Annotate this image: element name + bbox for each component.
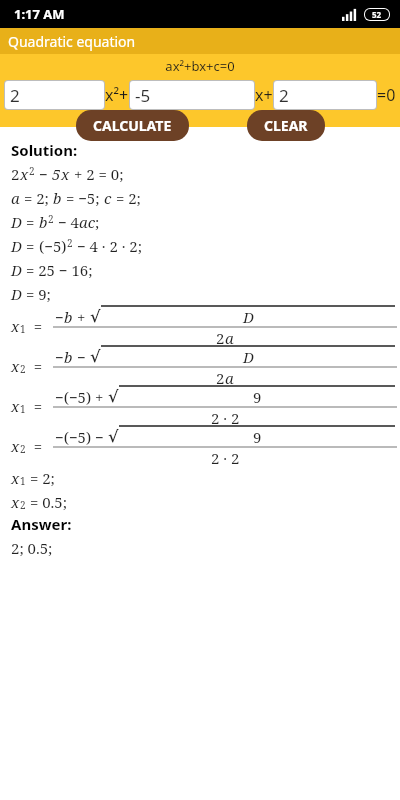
button[interactable]: 2 (5, 81, 104, 109)
staticText: 2 (29, 164, 35, 178)
staticText: Quadratic equation (8, 32, 136, 51)
staticText: x (11, 436, 20, 456)
staticText: − (55, 347, 64, 367)
staticText: x (11, 316, 20, 336)
staticText: 2 (279, 84, 289, 107)
staticText: = 2; (112, 188, 141, 208)
staticText: −(−5) + (55, 387, 108, 407)
staticText: √ (108, 387, 119, 406)
staticText: − 4 (54, 212, 79, 232)
staticText: = 2; (26, 468, 55, 488)
staticText: ax²+bx+c=0 (0, 57, 400, 75)
staticText: x+ (255, 84, 273, 106)
staticText: D (11, 212, 22, 232)
staticText: x (11, 356, 20, 376)
staticText: D (11, 284, 22, 304)
staticText: 2 (216, 368, 225, 386)
staticText: √ (90, 347, 101, 366)
staticText: x (11, 492, 20, 512)
button[interactable]: -5 (130, 81, 254, 109)
staticText: D (243, 307, 254, 327)
staticText: − (35, 164, 52, 184)
staticText: x (61, 164, 70, 184)
button[interactable]: CLEAR (247, 110, 325, 141)
staticText: b (64, 307, 73, 327)
staticText: x (20, 164, 29, 184)
staticText: 5 (52, 164, 61, 184)
staticText: a (11, 188, 20, 208)
button[interactable]: 2 (274, 81, 376, 109)
staticText: Solution: (11, 140, 78, 160)
staticText: x²+ (105, 84, 129, 106)
staticText: (−5) (39, 236, 67, 256)
staticText: CLEAR (264, 116, 308, 135)
button[interactable]: CALCULATE (76, 110, 189, 141)
staticText: a (225, 368, 234, 386)
staticText: Answer: (11, 514, 72, 534)
staticText: − (55, 307, 64, 327)
staticText: −(−5) − (55, 427, 108, 447)
staticText: b (53, 188, 62, 208)
staticText: 2 · 2 (211, 408, 240, 426)
staticText: 1 (20, 474, 26, 488)
staticText: ; (95, 212, 100, 232)
staticText: 2 · 2 (211, 448, 240, 466)
staticText: = (22, 212, 39, 232)
staticText: 2 (10, 84, 20, 107)
staticText: 9 (253, 427, 262, 447)
staticText: -5 (135, 84, 151, 107)
staticText: √ (108, 427, 119, 446)
staticText: 2 (20, 442, 26, 456)
staticText: 2 (48, 212, 54, 226)
staticText: 2; 0.5; (11, 538, 53, 558)
staticText: D (243, 347, 254, 367)
staticText: = 9; (22, 284, 51, 304)
staticText: = (26, 396, 50, 416)
staticText: 2 (20, 362, 26, 376)
staticText: = 2; (20, 188, 53, 208)
staticText: = −5; (62, 188, 104, 208)
staticText: b (39, 212, 48, 232)
staticText: 2 (20, 498, 26, 512)
staticText: CALCULATE (93, 116, 172, 135)
staticText: 1 (20, 322, 26, 336)
staticText: = (22, 236, 39, 256)
staticText: 2 (67, 236, 73, 250)
staticText: + (73, 307, 90, 327)
staticText: b (64, 347, 73, 367)
staticText: x (11, 468, 20, 488)
staticText: = (26, 316, 50, 336)
staticText: x (11, 396, 20, 416)
staticText: − (73, 347, 90, 367)
staticText: = 0.5; (26, 492, 67, 512)
staticText: 1 (20, 402, 26, 416)
staticText: = (26, 436, 50, 456)
staticText: 2 (216, 328, 225, 346)
staticText: D (11, 236, 22, 256)
staticText: ac (79, 212, 95, 232)
staticText: = 25 − 16; (22, 260, 93, 280)
staticText: c (104, 188, 112, 208)
staticText: 1:17 AM (14, 5, 65, 23)
staticText: a (225, 328, 234, 346)
staticText: 52 (372, 9, 382, 20)
staticText: = (26, 356, 50, 376)
staticText: =0 (377, 84, 396, 106)
staticText: + 2 = 0; (70, 164, 124, 184)
staticText: 2 (11, 164, 20, 184)
staticText: √ (90, 307, 101, 326)
staticText: D (11, 260, 22, 280)
staticText: − 4 · 2 · 2; (73, 236, 143, 256)
staticText: 9 (253, 387, 262, 407)
